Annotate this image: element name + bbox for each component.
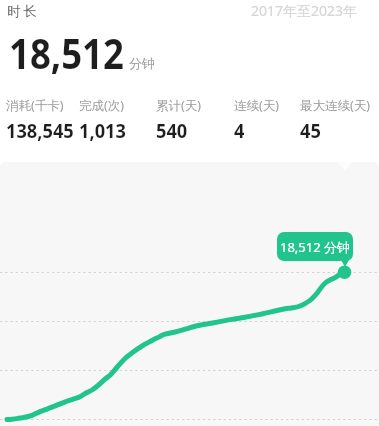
- staticText: 45: [300, 118, 321, 141]
- staticText: 18,512: [9, 24, 125, 81]
- staticText: 连续(天): [234, 97, 280, 114]
- button[interactable]: 2017年至2023年: [245, 0, 373, 23]
- staticText: 1,013: [79, 118, 126, 141]
- staticText: 最大连续(天): [300, 97, 371, 114]
- staticText: 540: [156, 118, 188, 141]
- button[interactable]: 累计(天): [156, 97, 202, 141]
- staticText: 消耗(千卡): [6, 97, 64, 114]
- button[interactable]: 18,512 分钟: [277, 232, 353, 261]
- button[interactable]: 时长: [4, 0, 64, 24]
- staticText: 18,512 分钟: [280, 238, 351, 256]
- staticText: 4: [234, 118, 245, 141]
- button[interactable]: 连续(天): [234, 97, 280, 141]
- staticText: 时长: [6, 3, 38, 20]
- button[interactable]: 消耗(千卡): [6, 97, 77, 141]
- button[interactable]: 完成(次): [79, 97, 128, 141]
- button[interactable]: 累计时长趋势图: [0, 162, 379, 426]
- staticText: 分钟: [129, 55, 155, 71]
- staticText: 累计(天): [156, 97, 202, 114]
- staticText: 2017年至2023年: [251, 1, 358, 20]
- staticText: 138,545: [6, 118, 74, 141]
- button[interactable]: 最大连续(天): [300, 97, 371, 141]
- staticText: 完成(次): [79, 97, 125, 114]
